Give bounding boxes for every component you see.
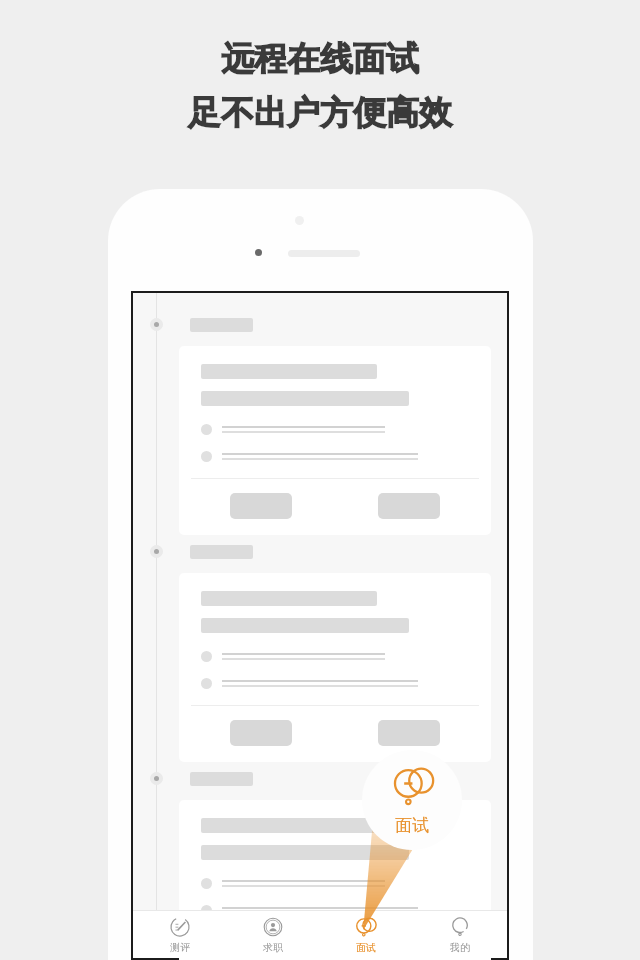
button[interactable] bbox=[230, 493, 292, 519]
staticText: 求职 bbox=[263, 941, 283, 954]
staticText: 面试 bbox=[356, 941, 376, 954]
button[interactable] bbox=[230, 720, 292, 746]
button[interactable]: 面试 Interview tab highlight bbox=[362, 750, 462, 850]
staticText: 面试 bbox=[395, 815, 429, 836]
staticText: 远程在线面试 bbox=[221, 38, 419, 80]
staticText: 我的 bbox=[450, 941, 470, 954]
staticText: 测评 bbox=[170, 941, 190, 954]
button[interactable]: 求职 bbox=[226, 911, 319, 958]
button[interactable] bbox=[378, 493, 440, 519]
staticText: 足不出户方便高效 bbox=[188, 92, 452, 134]
button[interactable] bbox=[378, 720, 440, 746]
button[interactable]: 测评 bbox=[133, 911, 226, 958]
button[interactable]: 面试 bbox=[319, 911, 413, 958]
button[interactable]: 我的 bbox=[413, 911, 507, 958]
